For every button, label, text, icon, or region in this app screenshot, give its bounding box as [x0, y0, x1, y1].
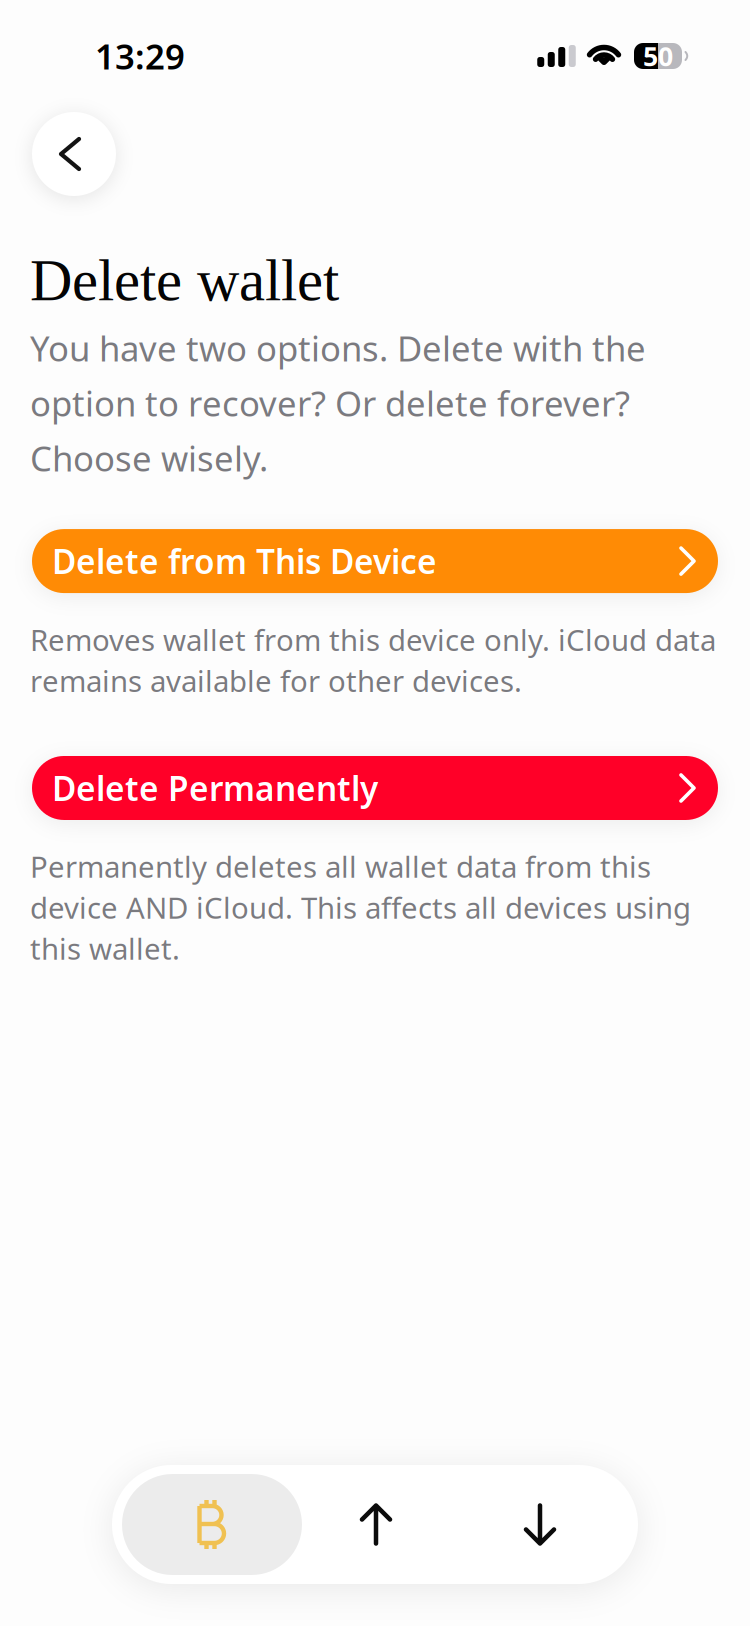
button[interactable]: Back	[32, 112, 116, 196]
staticText: Delete wallet	[30, 248, 339, 313]
button[interactable]: Send	[302, 1474, 450, 1575]
staticText: Removes wallet from this device only. iC…	[30, 620, 716, 700]
button[interactable]: Bitcoin	[122, 1474, 302, 1575]
button[interactable]: Delete from This Device	[32, 529, 718, 593]
staticText: Permanently deletes all wallet data from…	[30, 847, 691, 968]
staticText: Delete Permanently	[52, 766, 378, 810]
staticText: You have two options. Delete with the op…	[30, 325, 646, 481]
staticText: Delete from This Device	[52, 539, 437, 583]
staticText: 50	[643, 38, 673, 74]
button[interactable]: Receive	[450, 1474, 630, 1575]
staticText: 13:29	[95, 33, 185, 79]
button[interactable]: Delete Permanently	[32, 756, 718, 820]
